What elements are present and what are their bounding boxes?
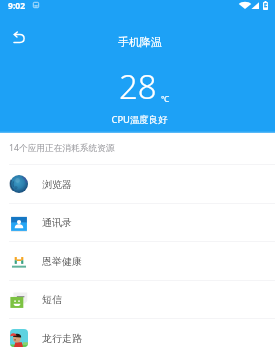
staticText: 14个应用正在消耗系统资源 — [9, 142, 115, 154]
staticText: 短信 — [42, 293, 62, 306]
staticText: 9:02 — [8, 0, 26, 10]
button[interactable]: 恩举健康 — [0, 242, 275, 281]
staticText: 浏览器 — [42, 178, 72, 191]
staticText: 28 — [119, 64, 157, 109]
staticText: 通讯录 — [42, 216, 72, 229]
button[interactable]: 浏览器 — [0, 165, 275, 204]
button[interactable]: 短信 — [0, 281, 275, 319]
staticText: ℃ — [161, 93, 170, 105]
staticText: CPU温度良好 — [2, 113, 275, 126]
staticText: 恩举健康 — [42, 255, 82, 268]
staticText: 龙行走路 — [42, 332, 82, 345]
button[interactable]: 通讯录 — [0, 204, 275, 242]
button[interactable]: Back — [7, 25, 31, 49]
button[interactable]: 龙行走路 — [0, 319, 275, 349]
staticText: 手机降温 — [118, 35, 162, 49]
